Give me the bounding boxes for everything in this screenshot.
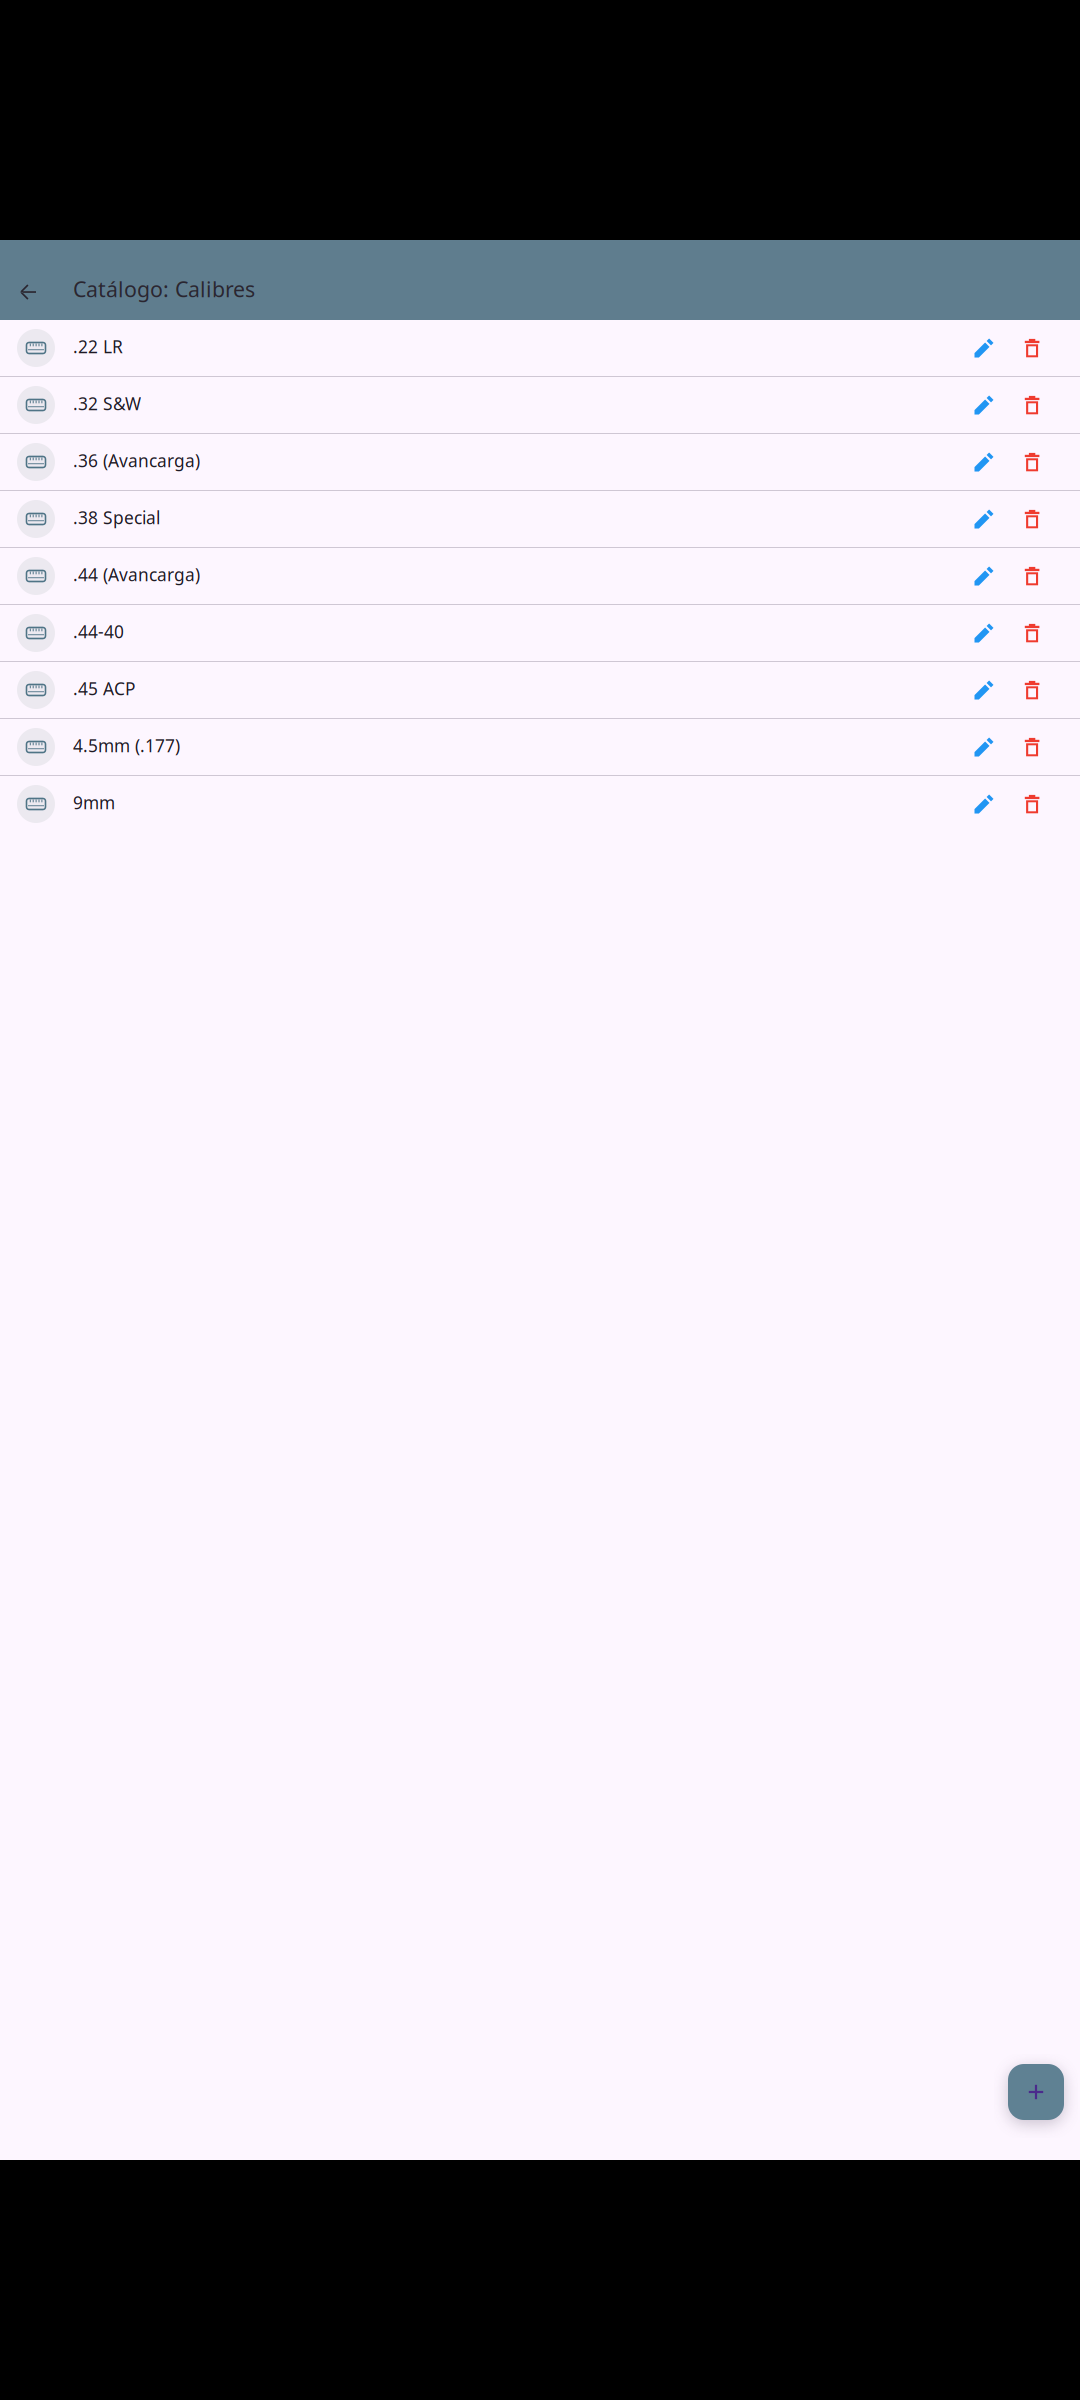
button[interactable]: Editar .22 LR (960, 322, 1008, 374)
button[interactable]: .22 LR (0, 320, 960, 376)
button[interactable]: Atrás (0, 264, 56, 320)
button[interactable]: .44-40 (0, 605, 960, 661)
button[interactable]: .44 (Avancarga) (0, 548, 960, 604)
button[interactable]: Editar 4.5mm (.177) (960, 721, 1008, 773)
button[interactable]: Editar 9mm (960, 778, 1008, 830)
staticText: .22 LR (73, 335, 123, 358)
button[interactable]: Editar .38 Special (960, 493, 1008, 545)
button[interactable]: Editar .44-40 (960, 607, 1008, 659)
staticText: Catálogo: Calibres (73, 275, 255, 303)
staticText: 9mm (73, 791, 115, 814)
staticText: .36 (Avancarga) (73, 449, 200, 472)
button[interactable]: .38 Special (0, 491, 960, 547)
button[interactable]: Eliminar .22 LR (1008, 322, 1056, 374)
staticText: .44 (Avancarga) (73, 563, 200, 586)
button[interactable]: Editar .44 (Avancarga) (960, 550, 1008, 602)
button[interactable]: .45 ACP (0, 662, 960, 718)
button[interactable]: Eliminar .45 ACP (1008, 664, 1056, 716)
staticText: .32 S&W (73, 392, 141, 415)
button[interactable]: Editar .45 ACP (960, 664, 1008, 716)
button[interactable]: Eliminar .44-40 (1008, 607, 1056, 659)
button[interactable]: Eliminar .38 Special (1008, 493, 1056, 545)
staticText: .38 Special (73, 506, 160, 529)
button[interactable]: Añadir calibre (1008, 2064, 1064, 2120)
button[interactable]: 4.5mm (.177) (0, 719, 960, 775)
staticText: 4.5mm (.177) (73, 734, 180, 757)
button[interactable]: .32 S&W (0, 377, 960, 433)
staticText: .44-40 (73, 620, 124, 643)
button[interactable]: 9mm (0, 776, 960, 832)
button[interactable]: Editar .36 (Avancarga) (960, 436, 1008, 488)
button[interactable]: Editar .32 S&W (960, 379, 1008, 431)
button[interactable]: Eliminar 4.5mm (.177) (1008, 721, 1056, 773)
button[interactable]: .36 (Avancarga) (0, 434, 960, 490)
button[interactable]: Eliminar .44 (Avancarga) (1008, 550, 1056, 602)
staticText: .45 ACP (73, 677, 135, 700)
button[interactable]: Eliminar 9mm (1008, 778, 1056, 830)
button[interactable]: Eliminar .32 S&W (1008, 379, 1056, 431)
button[interactable]: Eliminar .36 (Avancarga) (1008, 436, 1056, 488)
